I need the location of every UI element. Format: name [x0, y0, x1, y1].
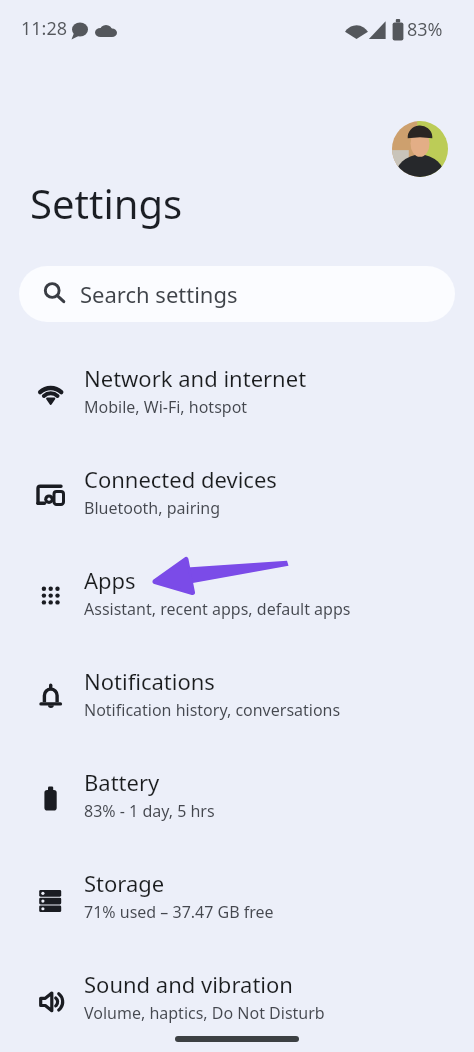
button[interactable]	[392, 121, 448, 177]
staticText: Apps	[84, 565, 136, 595]
staticText: Battery	[84, 767, 160, 797]
button[interactable]: Apps	[0, 544, 474, 645]
staticText: Volume, haptics, Do Not Disturb	[84, 1002, 325, 1024]
staticText: 11:28	[21, 16, 68, 41]
staticText: 83% - 1 day, 5 hrs	[84, 800, 215, 822]
staticText: Settings	[30, 176, 183, 230]
staticText: Search settings	[80, 279, 238, 309]
button[interactable]: Connected devices	[0, 443, 474, 544]
staticText: Notification history, conversations	[84, 699, 341, 721]
button[interactable]: Battery	[0, 746, 474, 847]
button[interactable]: Search settings	[19, 266, 455, 322]
button[interactable]: Sound and vibration	[0, 948, 474, 1049]
button[interactable]: Notifications	[0, 645, 474, 746]
staticText: Network and internet	[84, 363, 307, 393]
staticText: Assistant, recent apps, default apps	[84, 598, 351, 620]
button[interactable]: Storage	[0, 847, 474, 948]
staticText: 83%	[407, 17, 443, 42]
staticText: Storage	[84, 868, 165, 898]
button[interactable]: Network and internet	[0, 342, 474, 443]
staticText: Connected devices	[84, 464, 277, 494]
staticText: Mobile, Wi-Fi, hotspot	[84, 396, 248, 418]
staticText: Bluetooth, pairing	[84, 497, 221, 519]
staticText: Notifications	[84, 666, 215, 696]
staticText: 71% used – 37.47 GB free	[84, 901, 274, 923]
staticText: Sound and vibration	[84, 969, 293, 999]
